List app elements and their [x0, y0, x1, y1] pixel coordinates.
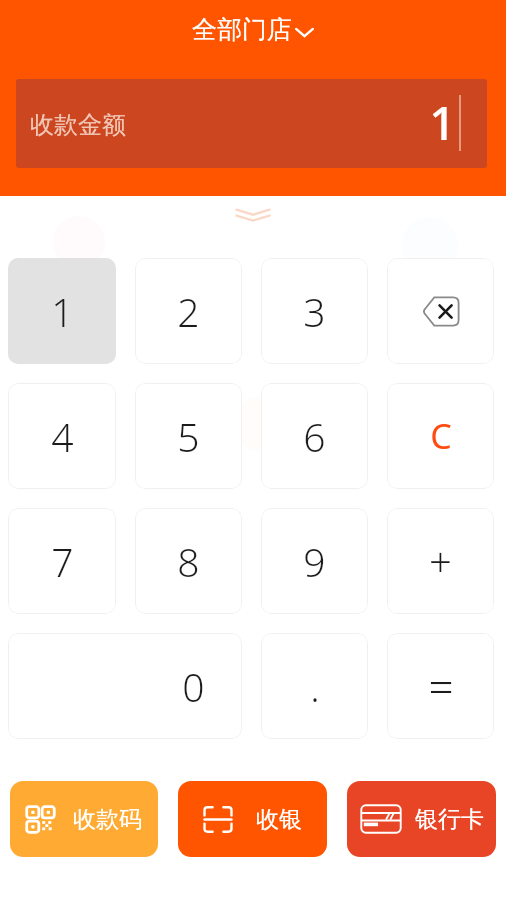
staticText: 4	[51, 410, 74, 463]
staticText: =	[428, 656, 454, 716]
staticText: 银行卡	[415, 805, 484, 834]
button[interactable]: 6	[261, 383, 368, 489]
button[interactable]: 收款码	[10, 781, 158, 857]
staticText: 8	[177, 535, 200, 588]
button[interactable]: Clear	[387, 383, 494, 489]
staticText: +	[429, 534, 452, 588]
staticText: 1	[51, 285, 74, 338]
button[interactable]: 1	[8, 258, 116, 364]
staticText: 2	[177, 285, 200, 338]
button[interactable]: +	[387, 508, 494, 614]
button[interactable]: 9	[261, 508, 368, 614]
button[interactable]: Backspace	[387, 258, 494, 364]
button[interactable]: 3	[261, 258, 368, 364]
staticText: .	[310, 660, 320, 713]
button[interactable]: 银行卡	[347, 781, 496, 857]
staticText: 3	[303, 285, 326, 338]
button[interactable]: 2	[135, 258, 242, 364]
button[interactable]: 5	[135, 383, 242, 489]
button[interactable]: 收款金额	[16, 79, 487, 168]
staticText: 收款码	[73, 805, 142, 834]
staticText: 1	[429, 91, 456, 154]
staticText: 6	[303, 410, 326, 463]
staticText: 收款金额	[30, 110, 126, 140]
button[interactable]: 0	[8, 633, 242, 739]
staticText: 收银	[256, 805, 302, 834]
button[interactable]: 7	[8, 508, 116, 614]
staticText: 7	[51, 535, 74, 588]
button[interactable]: .	[261, 633, 368, 739]
staticText: 9	[303, 535, 326, 588]
button[interactable]: 8	[135, 508, 242, 614]
button[interactable]: 全部门店	[192, 14, 314, 45]
staticText: 全部门店	[192, 14, 292, 45]
staticText: C	[430, 413, 452, 459]
button[interactable]: 收银	[178, 781, 327, 857]
button[interactable]: 4	[8, 383, 116, 489]
staticText: 5	[177, 410, 200, 463]
staticText: 0	[182, 660, 205, 713]
button[interactable]: =	[387, 633, 494, 739]
